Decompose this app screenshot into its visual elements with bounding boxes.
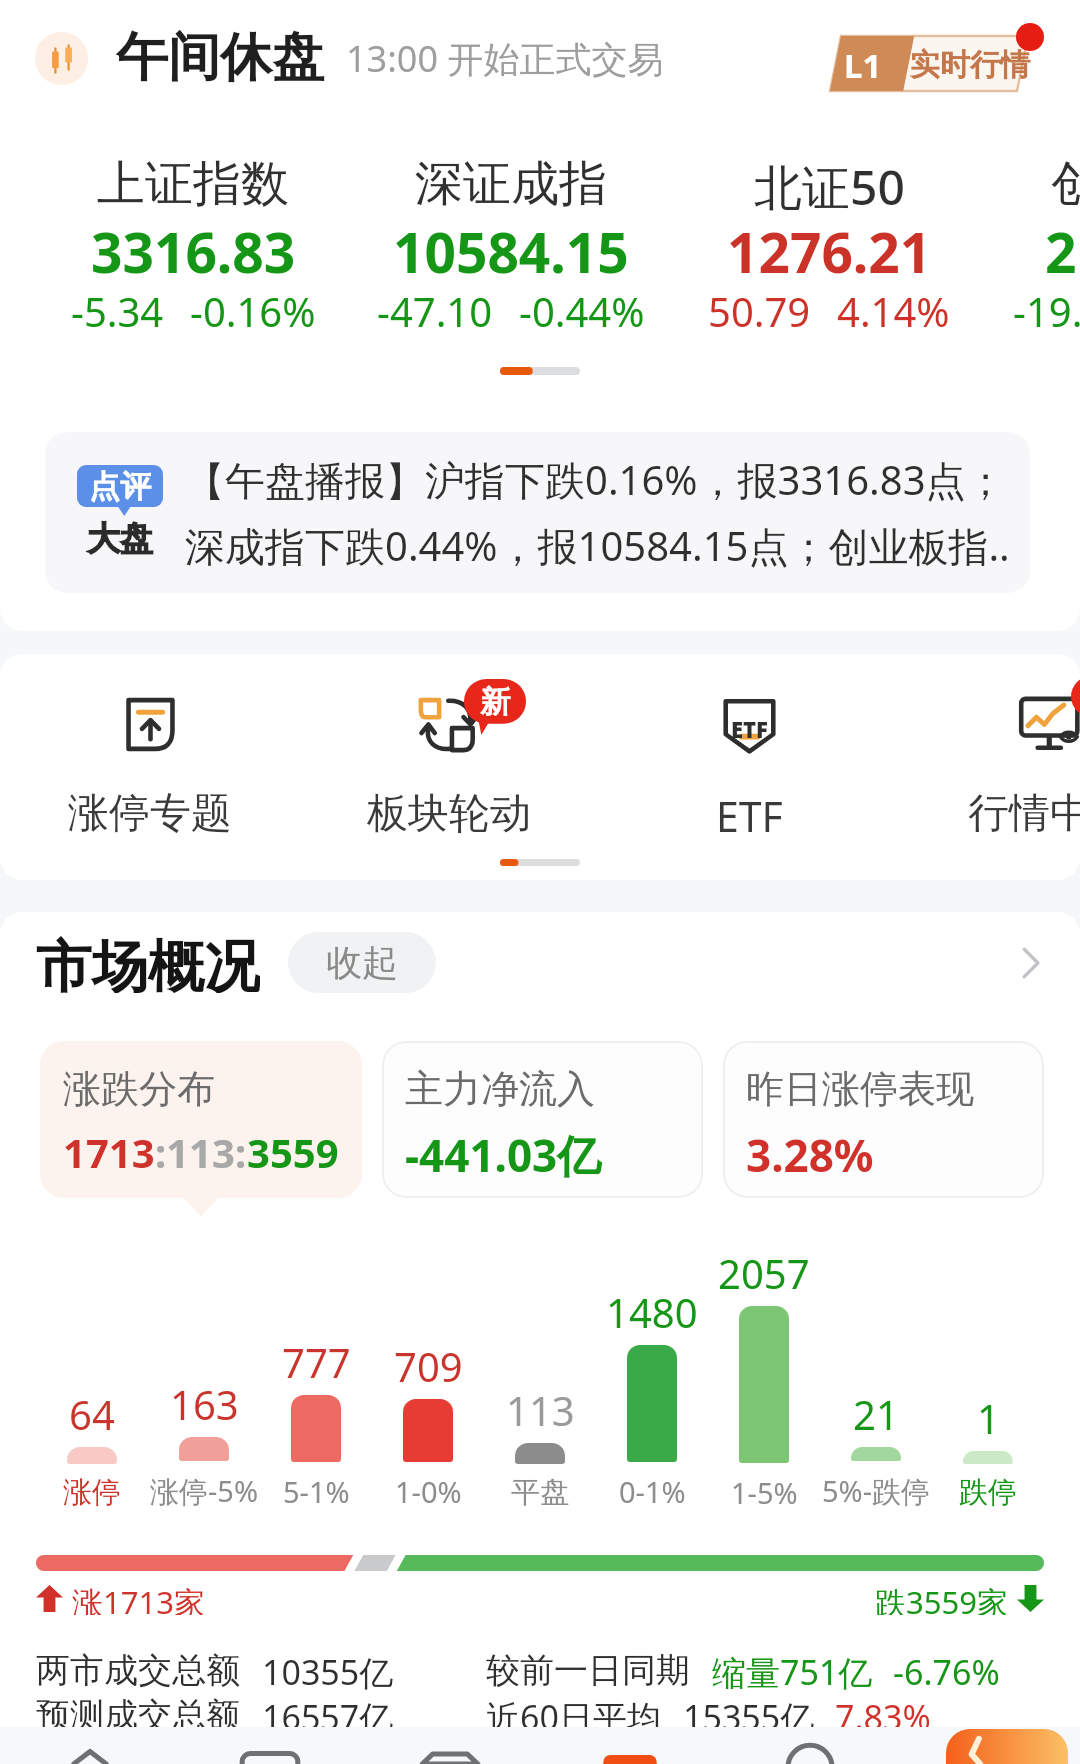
staticText: L1 [844, 43, 882, 88]
staticText: 10355亿 [262, 1649, 394, 1694]
staticText: 777 [282, 1335, 351, 1389]
staticText: -441.03亿 [405, 1125, 602, 1185]
staticText: 15355亿 [683, 1694, 815, 1739]
staticText: -19.52 [1013, 284, 1080, 338]
staticText: 深证成指 [415, 154, 607, 214]
staticText: 5%-跌停 [822, 1471, 931, 1511]
staticText: 64 [69, 1387, 115, 1441]
button[interactable]: 上证指数 [34, 154, 352, 338]
staticText: 涨停专题 [68, 788, 232, 837]
staticText: 3559 [247, 1125, 339, 1179]
button[interactable]: 市场概况 [36, 932, 1048, 993]
staticText: 创业板指 [1051, 154, 1080, 214]
staticText: 3316.83 [91, 214, 296, 284]
staticText: 1-5% [731, 1473, 798, 1511]
staticText: 昨日涨停表现 [746, 1065, 974, 1113]
staticText: 2057 [718, 1246, 810, 1300]
staticText: 4.14% [837, 284, 950, 338]
staticText: 实时行情 [910, 46, 1030, 84]
button[interactable]: 自选 [180, 1727, 360, 1764]
staticText: 两市成交总额 [36, 1649, 240, 1692]
staticText: 709 [394, 1339, 463, 1393]
staticText: 收起 [326, 940, 398, 985]
staticText: 上证指数 [97, 154, 289, 214]
staticText: 点评 [89, 467, 151, 506]
staticText: 行情中心 [968, 788, 1080, 837]
button[interactable]: 交易 [540, 1727, 720, 1764]
staticText: 163 [170, 1377, 239, 1431]
staticText: 缩量751亿 [712, 1649, 873, 1694]
staticText: 113 [506, 1383, 575, 1437]
staticText: ETF [731, 714, 768, 744]
staticText: 跌3559家 [875, 1581, 1008, 1615]
staticText: 涨停-5% [150, 1471, 259, 1511]
button[interactable]: 行情 [360, 1727, 540, 1764]
button[interactable]: 昨日涨停表现 [723, 1041, 1044, 1198]
button[interactable]: 新 [299, 694, 598, 837]
button[interactable]: 实时行情 L1 [824, 22, 1044, 94]
staticText: 1480 [606, 1285, 698, 1339]
staticText: 涨跌分布 [63, 1065, 215, 1113]
staticText: 新 [480, 683, 510, 721]
staticText: 5-1% [283, 1472, 350, 1511]
staticText: -47.10 [377, 284, 493, 338]
staticText: 板块轮动 [367, 788, 531, 837]
button[interactable]: 北证50 [670, 154, 988, 338]
staticText: 预测成交总额 [36, 1694, 240, 1737]
staticText: 1 [977, 1391, 1000, 1445]
staticText: -0.44% [519, 284, 645, 338]
staticText: 主力净流入 [405, 1065, 595, 1113]
staticText: 平盘 [511, 1474, 569, 1511]
staticText: 大盘 [87, 518, 153, 560]
staticText: 近60日平均 [486, 1694, 661, 1739]
button[interactable]: 主力净流入 [382, 1041, 703, 1198]
staticText: 1713 [63, 1125, 155, 1179]
button[interactable]: 我的 [720, 1727, 900, 1764]
staticText: -6.76% [893, 1649, 1000, 1694]
staticText: -5.34 [71, 284, 164, 338]
staticText: 0-1% [619, 1472, 686, 1511]
staticText: 13:00 开始正式交易 [346, 34, 664, 83]
staticText: 7.83% [835, 1694, 931, 1739]
staticText: 北证50 [754, 154, 905, 214]
button[interactable]: AI 助手 [946, 1729, 1068, 1764]
staticText: 市场概况 [36, 932, 260, 993]
staticText: 跌停 [959, 1474, 1017, 1511]
button[interactable]: 点评 [45, 432, 1030, 593]
staticText: ETF [716, 788, 783, 837]
staticText: 1276.21 [727, 214, 932, 284]
staticText: 3.28% [746, 1125, 874, 1185]
button[interactable]: 涨停专题 [0, 694, 299, 837]
staticText: 【午盘播报】沪指下跌0.16%，报3316.83点； [185, 452, 1006, 507]
staticText: 较前一日同期 [486, 1649, 690, 1692]
button[interactable]: 创业板指 [988, 154, 1080, 338]
button[interactable]: 深证成指 [352, 154, 670, 338]
staticText: :113: [155, 1125, 247, 1179]
staticText: 2105.44 [1045, 214, 1080, 284]
staticText: 1-0% [395, 1472, 462, 1511]
staticText: 午间休盘 [116, 25, 324, 91]
staticText: 10584.15 [393, 214, 629, 284]
staticText: 涨1713家 [72, 1581, 205, 1615]
button[interactable]: 涨跌分布 [40, 1041, 362, 1198]
staticText: 50.79 [708, 284, 811, 338]
button[interactable]: ETF [598, 694, 900, 837]
button[interactable]: 首页 [0, 1727, 180, 1764]
staticText: 深成指下跌0.44%，报10584.15点；创业板指… [185, 518, 1010, 573]
staticText: 21 [853, 1387, 899, 1441]
staticText: 16557亿 [262, 1694, 394, 1739]
button[interactable]: 行情中心 [900, 694, 1080, 837]
staticText: -0.16% [190, 284, 316, 338]
staticText: 涨停 [63, 1474, 121, 1511]
